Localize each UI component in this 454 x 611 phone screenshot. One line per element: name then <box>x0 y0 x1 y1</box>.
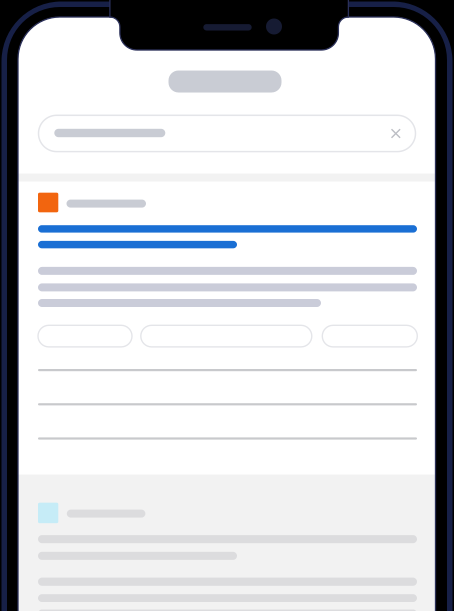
button[interactable]: Search <box>38 115 415 152</box>
button[interactable]: Filter <box>38 325 132 347</box>
button[interactable]: Filter <box>141 325 312 347</box>
button[interactable]: Search result <box>18 193 435 307</box>
button[interactable]: Filter <box>322 325 417 347</box>
button[interactable]: Loading result <box>18 503 435 611</box>
